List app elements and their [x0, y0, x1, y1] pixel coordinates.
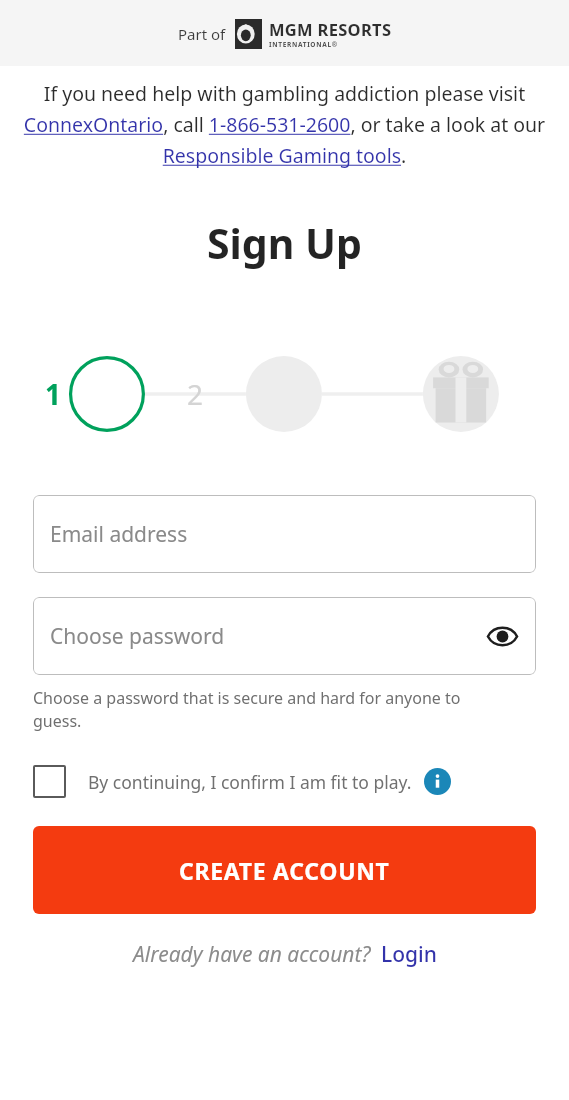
button[interactable]: By continuing, I confirm I am fit to pla…	[33, 765, 536, 798]
staticText: Login	[381, 940, 437, 969]
staticText: 2	[187, 375, 204, 413]
staticText: If you need help with gambling addiction…	[18, 80, 551, 169]
staticText: MGM RESORTS	[269, 18, 392, 40]
button[interactable]: Email address	[33, 495, 536, 573]
staticText: 1	[45, 375, 62, 413]
staticText: Already have an account?	[133, 940, 371, 969]
button[interactable]: Choose password	[33, 597, 536, 675]
staticText: Part of	[178, 24, 226, 44]
button[interactable]: More information	[424, 768, 451, 795]
button[interactable]: CREATE ACCOUNT	[33, 826, 536, 914]
staticText: CREATE ACCOUNT	[179, 855, 390, 886]
staticText: Choose a password that is secure and har…	[33, 687, 497, 732]
button[interactable]: Login	[381, 940, 437, 969]
staticText: Sign Up	[0, 215, 569, 271]
staticText: Email address	[50, 520, 188, 549]
staticText: By continuing, I confirm I am fit to pla…	[88, 770, 412, 794]
staticText: Choose password	[50, 622, 225, 651]
staticText: INTERNATIONAL®	[269, 40, 338, 49]
button[interactable]: Show password	[482, 616, 522, 656]
